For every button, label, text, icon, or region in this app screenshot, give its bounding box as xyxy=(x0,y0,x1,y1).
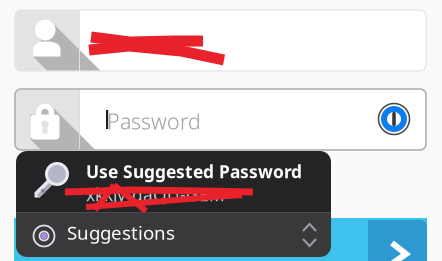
staticText: Use Suggested Password xyxy=(86,160,302,183)
button[interactable]: Next field xyxy=(368,220,427,261)
staticText: Password xyxy=(107,107,201,135)
button[interactable] xyxy=(15,10,426,71)
staticText: xkkjy-daQU-GEM xyxy=(86,183,225,206)
button[interactable]: Password xyxy=(15,89,426,150)
button[interactable]: Suggestions xyxy=(16,213,331,257)
staticText: Suggestions xyxy=(67,220,175,245)
button[interactable]: Use Suggested Password xyxy=(16,151,331,212)
